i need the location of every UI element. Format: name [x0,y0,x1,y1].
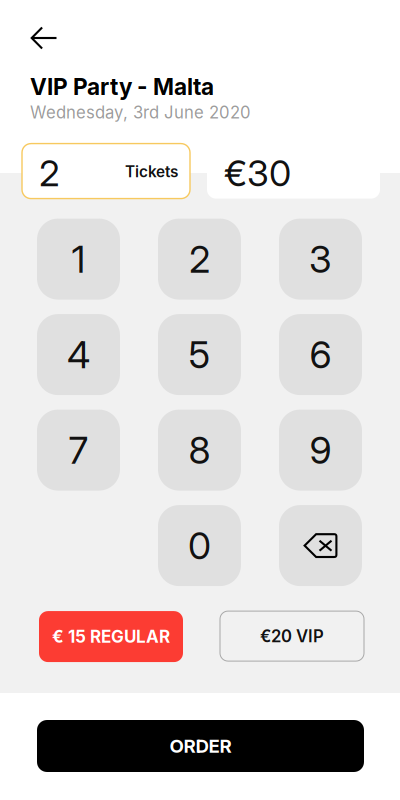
staticText: 7 [68,427,88,473]
button[interactable]: 6 [279,314,362,395]
button[interactable]: ORDER [37,720,364,772]
button[interactable]: €20 VIP [220,611,364,661]
button[interactable]: 4 [37,314,120,395]
button[interactable]: 2 [22,144,190,199]
button[interactable]: Delete [279,505,362,586]
button[interactable]: € 15 REGULAR [39,611,183,662]
staticText: 3 [309,236,332,282]
button[interactable]: 2 [158,219,241,300]
staticText: €20 VIP [260,626,324,646]
button[interactable]: 8 [158,410,241,491]
button[interactable]: 0 [158,505,241,586]
staticText: Wednesday, 3rd June 2020 [30,102,251,123]
staticText: 1 [71,236,85,282]
staticText: VIP Party - Malta [30,73,214,100]
staticText: ORDER [169,735,231,757]
staticText: € 15 REGULAR [52,626,170,647]
staticText: 2 [189,236,210,282]
button[interactable]: €30 [207,144,380,199]
button[interactable]: 5 [158,314,241,395]
staticText: 4 [67,332,90,377]
staticText: 8 [188,427,210,473]
staticText: 5 [188,332,210,377]
staticText: 6 [309,332,331,377]
button[interactable]: Back [22,16,66,60]
button[interactable]: 1 [37,219,120,300]
staticText: 2 [39,151,60,195]
button[interactable]: 3 [279,219,362,300]
staticText: 9 [309,427,331,473]
staticText: 0 [188,523,211,568]
staticText: €30 [224,151,291,195]
button[interactable]: 9 [279,410,362,491]
staticText: Tickets [125,162,178,181]
button[interactable]: 7 [37,410,120,491]
